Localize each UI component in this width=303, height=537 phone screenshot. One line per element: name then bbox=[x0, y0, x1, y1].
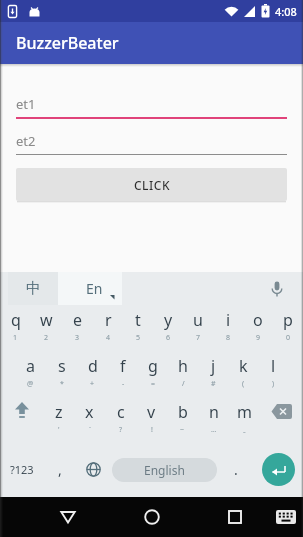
staticText: @ bbox=[27, 379, 34, 389]
staticText: ˍ bbox=[243, 425, 246, 435]
staticText: w bbox=[40, 309, 53, 331]
button[interactable]: m bbox=[229, 396, 260, 443]
staticText: g bbox=[148, 355, 158, 377]
staticText: ! bbox=[151, 425, 153, 435]
staticText: n bbox=[209, 401, 219, 423]
staticText: h bbox=[178, 355, 188, 377]
staticText: 6 bbox=[166, 333, 171, 343]
staticText: ~ bbox=[180, 425, 185, 435]
staticText: ( bbox=[242, 379, 245, 389]
button[interactable]: h bbox=[168, 350, 198, 396]
button[interactable]: CLICK bbox=[16, 168, 287, 201]
button[interactable]: 中 bbox=[8, 272, 58, 305]
staticText: r bbox=[105, 309, 112, 331]
staticText: c bbox=[117, 401, 125, 423]
staticText: * bbox=[60, 379, 64, 389]
staticText: t bbox=[135, 309, 141, 331]
button[interactable] bbox=[215, 497, 255, 537]
staticText: ?123 bbox=[10, 462, 34, 477]
button[interactable]: g bbox=[138, 350, 168, 396]
staticText: z bbox=[55, 401, 63, 423]
button[interactable]: w bbox=[31, 305, 62, 350]
staticText: 4 bbox=[106, 333, 111, 343]
button[interactable]: o bbox=[243, 305, 273, 350]
button[interactable]: z bbox=[43, 396, 74, 443]
staticText: 8 bbox=[226, 333, 231, 343]
staticText: ' bbox=[58, 425, 60, 435]
staticText: ` bbox=[89, 425, 91, 435]
staticText: / bbox=[182, 379, 185, 389]
button[interactable]: k bbox=[228, 350, 258, 396]
button[interactable]: e bbox=[62, 305, 93, 350]
staticText: # bbox=[211, 379, 216, 389]
button[interactable]: d bbox=[77, 350, 108, 396]
button[interactable]: s bbox=[46, 350, 77, 396]
staticText: a bbox=[26, 355, 35, 377]
button[interactable]: . bbox=[219, 443, 253, 496]
staticText: p bbox=[283, 309, 293, 331]
staticText: o bbox=[253, 309, 263, 331]
staticText: et2 bbox=[16, 132, 36, 150]
staticText: ) bbox=[272, 379, 275, 389]
staticText: u bbox=[193, 309, 203, 331]
button[interactable] bbox=[132, 497, 172, 537]
staticText: k bbox=[239, 355, 248, 377]
staticText: + bbox=[90, 379, 95, 389]
button[interactable]: i bbox=[213, 305, 243, 350]
button[interactable]: a bbox=[15, 350, 46, 396]
button[interactable]: v bbox=[136, 396, 167, 443]
staticText: ? bbox=[119, 425, 123, 435]
staticText: CLICK bbox=[134, 177, 170, 193]
button[interactable]: n bbox=[198, 396, 229, 443]
button[interactable] bbox=[251, 272, 303, 305]
staticText: 1 bbox=[13, 333, 18, 343]
button[interactable]: t bbox=[123, 305, 153, 350]
staticText: et1 bbox=[16, 95, 36, 113]
button[interactable]: b bbox=[167, 396, 198, 443]
button[interactable]: j bbox=[198, 350, 228, 396]
button[interactable]: , bbox=[44, 443, 76, 496]
button[interactable]: En bbox=[58, 272, 122, 305]
staticText: 7 bbox=[196, 333, 201, 343]
button[interactable]: English bbox=[112, 458, 217, 482]
button[interactable] bbox=[253, 443, 303, 496]
staticText: … bbox=[211, 425, 217, 435]
button[interactable]: c bbox=[105, 396, 136, 443]
staticText: 9 bbox=[256, 333, 261, 343]
button[interactable]: et2 bbox=[16, 132, 287, 155]
staticText: b bbox=[178, 401, 188, 423]
button[interactable] bbox=[76, 443, 110, 496]
staticText: 0 bbox=[286, 333, 291, 343]
staticText: , bbox=[58, 460, 62, 479]
button[interactable] bbox=[260, 396, 303, 443]
staticText: x bbox=[85, 401, 94, 423]
staticText: En bbox=[86, 279, 103, 298]
staticText: i bbox=[226, 309, 231, 331]
staticText: v bbox=[147, 401, 156, 423]
staticText: y bbox=[164, 309, 173, 331]
staticText: 3 bbox=[75, 333, 80, 343]
staticText: l bbox=[271, 355, 276, 377]
button[interactable] bbox=[0, 396, 43, 443]
button[interactable]: y bbox=[153, 305, 183, 350]
button[interactable] bbox=[272, 503, 300, 531]
button[interactable]: u bbox=[183, 305, 213, 350]
button[interactable]: et1 bbox=[16, 95, 287, 119]
button[interactable]: ?123 bbox=[0, 443, 44, 496]
button[interactable]: l bbox=[258, 350, 288, 396]
staticText: d bbox=[88, 355, 98, 377]
button[interactable]: r bbox=[93, 305, 123, 350]
staticText: 4:08 bbox=[275, 4, 297, 19]
button[interactable]: p bbox=[273, 305, 303, 350]
staticText: m bbox=[237, 401, 252, 423]
button[interactable]: q bbox=[0, 305, 31, 350]
button[interactable] bbox=[48, 497, 88, 537]
button[interactable]: f bbox=[108, 350, 138, 396]
staticText: s bbox=[58, 355, 66, 377]
staticText: = bbox=[151, 379, 156, 389]
staticText: f bbox=[120, 355, 126, 377]
staticText: - bbox=[122, 379, 125, 389]
staticText: English bbox=[144, 462, 185, 478]
staticText: BuzzerBeater bbox=[16, 32, 119, 54]
button[interactable]: x bbox=[74, 396, 105, 443]
